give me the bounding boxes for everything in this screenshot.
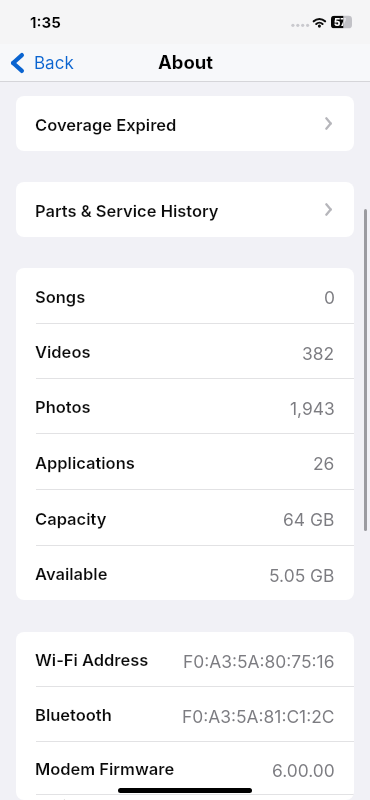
button[interactable]: Photos [16, 379, 354, 433]
staticText: About [158, 51, 214, 73]
staticText: 1,943 [290, 398, 335, 419]
staticText: 5.05 GB [269, 565, 335, 586]
staticText: Available [35, 564, 108, 584]
staticText: Bluetooth [35, 705, 112, 725]
button[interactable]: Videos [16, 324, 354, 378]
button[interactable]: Capacity [16, 490, 354, 545]
button[interactable]: Bluetooth [16, 687, 354, 741]
button[interactable]: Back [0, 48, 84, 77]
staticText: F0:A3:5A:80:75:16 [183, 651, 335, 672]
staticText: Back [34, 53, 74, 74]
button[interactable]: Modem Firmware [16, 742, 354, 794]
button[interactable]: Coverage Expired [16, 96, 354, 151]
staticText: 6.00.00 [272, 760, 335, 781]
staticText: Coverage Expired [35, 115, 177, 135]
staticText: Photos [35, 397, 91, 417]
staticText: Videos [35, 342, 91, 362]
staticText: 26 [313, 453, 335, 474]
button[interactable]: Parts & Service History [16, 182, 354, 237]
staticText: 64 GB [283, 509, 335, 530]
button[interactable]: Wi-Fi Address [16, 632, 354, 686]
staticText: Parts & Service History [35, 201, 219, 221]
button[interactable]: Songs [16, 268, 354, 323]
staticText: Songs [35, 287, 86, 307]
staticText: 382 [302, 343, 335, 364]
staticText: F0:A3:5A:81:C1:2C [182, 706, 335, 727]
staticText: 0 [324, 287, 335, 308]
staticText: Capacity [35, 509, 107, 529]
staticText: Wi-Fi Address [35, 650, 149, 670]
staticText: Applications [35, 453, 135, 473]
staticText: 1:35 [30, 13, 61, 31]
staticText: Modem Firmware [35, 759, 175, 779]
button[interactable]: Applications [16, 434, 354, 489]
button[interactable]: Available [16, 546, 354, 600]
